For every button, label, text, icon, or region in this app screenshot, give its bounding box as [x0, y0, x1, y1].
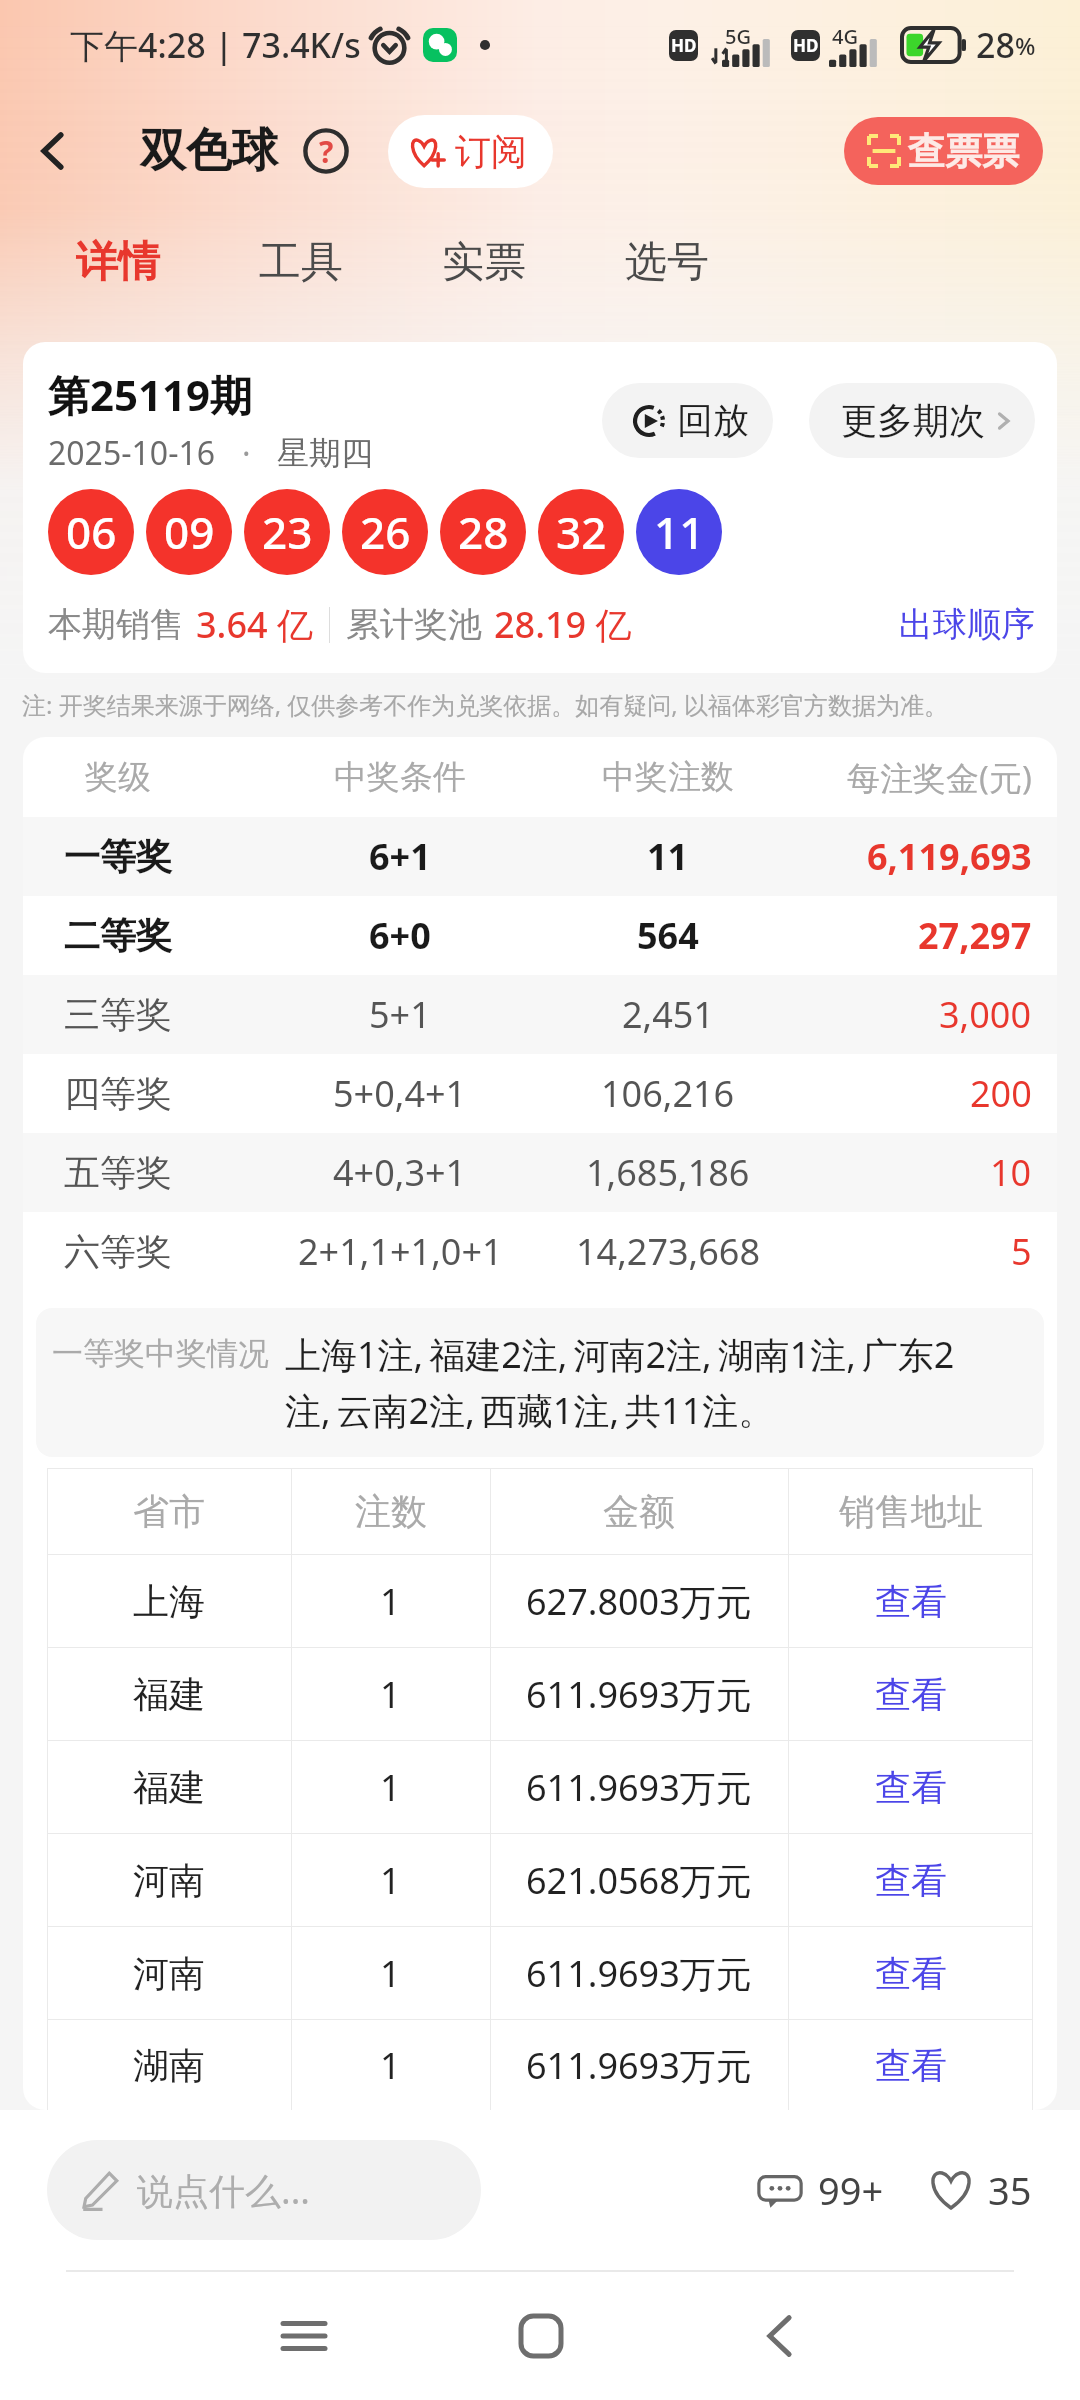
- staticText: 1: [380, 1856, 401, 1905]
- button[interactable]: Like: [926, 2164, 1032, 2216]
- staticText: 累计奖池: [346, 603, 482, 646]
- staticText: 611.9693万元: [526, 2041, 752, 2090]
- staticText: 1: [380, 1949, 401, 1998]
- button[interactable]: Back: [0, 96, 104, 206]
- staticText: 611.9693万元: [526, 1949, 752, 1998]
- button[interactable]: Recents: [258, 2290, 350, 2382]
- staticText: 1,685,186: [586, 1148, 750, 1197]
- staticText: %: [1015, 29, 1036, 62]
- staticText: 出球顺序: [899, 603, 1035, 646]
- button[interactable]: 查看: [788, 2020, 1033, 2110]
- staticText: 第25119期: [48, 366, 253, 423]
- button[interactable]: 工具: [259, 206, 442, 318]
- staticText: 621.0568万元: [526, 1856, 752, 1905]
- staticText: 福建: [133, 1672, 205, 1717]
- staticText: 1: [380, 1577, 401, 1626]
- staticText: 三等奖: [64, 992, 172, 1037]
- staticText: 查看: [875, 2043, 947, 2088]
- button[interactable]: 说点什么...: [47, 2140, 481, 2240]
- button[interactable]: 回放: [602, 383, 773, 458]
- staticText: 06: [66, 502, 117, 562]
- button[interactable]: Back: [733, 2290, 825, 2382]
- button[interactable]: Comments: [756, 2164, 884, 2216]
- staticText: 627.8003万元: [526, 1577, 752, 1626]
- button[interactable]: 订阅: [388, 115, 553, 188]
- staticText: 27,297: [918, 911, 1032, 960]
- staticText: 本期销售: [48, 603, 184, 646]
- staticText: 2,451: [622, 990, 715, 1039]
- staticText: HD: [671, 34, 697, 57]
- staticText: 上海1注, 福建2注, 河南2注, 湖南1注, 广东2 注, 云南2注, 西藏1…: [285, 1330, 955, 1435]
- staticText: 5+0,4+1: [333, 1069, 467, 1118]
- button[interactable]: Home: [495, 2290, 587, 2382]
- button[interactable]: 查看: [788, 1648, 1033, 1740]
- staticText: 26: [360, 502, 411, 562]
- staticText: 注: 开奖结果来源于网络, 仅供参考不作为兑奖依据。如有疑问, 以福体彩官方数据…: [22, 688, 949, 721]
- staticText: 14,273,668: [576, 1227, 761, 1276]
- staticText: 每注奖金(元): [847, 755, 1032, 800]
- staticText: 金额: [603, 1489, 675, 1534]
- button[interactable]: 更多期次: [809, 383, 1035, 458]
- button[interactable]: 查看: [788, 1741, 1033, 1833]
- staticText: 四等奖: [64, 1071, 172, 1116]
- button[interactable]: 查票票: [844, 117, 1043, 185]
- staticText: 查看: [875, 1951, 947, 1996]
- button[interactable]: 选号: [625, 206, 808, 318]
- staticText: 6+0: [369, 911, 431, 960]
- staticText: 6+1: [369, 832, 431, 881]
- staticText: 28.19 亿: [494, 600, 632, 649]
- staticText: 10: [990, 1148, 1032, 1197]
- staticText: 二等奖: [64, 913, 172, 958]
- staticText: 1: [380, 2041, 401, 2090]
- staticText: 查看: [875, 1579, 947, 1624]
- staticText: 1: [380, 1763, 401, 1812]
- button[interactable]: 详情: [76, 206, 259, 318]
- staticText: 奖级: [85, 756, 151, 798]
- staticText: 下午4:28 | 73.4K/s: [70, 22, 361, 68]
- staticText: ?: [319, 131, 334, 172]
- staticText: 611.9693万元: [526, 1670, 752, 1719]
- staticText: 选号: [625, 236, 709, 289]
- staticText: 更多期次: [841, 398, 985, 443]
- staticText: 说点什么...: [137, 2166, 310, 2215]
- staticText: 工具: [259, 236, 343, 289]
- staticText: 09: [164, 502, 215, 562]
- button[interactable]: 查看: [788, 1927, 1033, 2019]
- staticText: 3,000: [939, 990, 1032, 1039]
- button[interactable]: 查看: [788, 1834, 1033, 1926]
- staticText: 564: [637, 911, 699, 960]
- button[interactable]: 出球顺序: [899, 603, 1035, 646]
- staticText: 1: [380, 1670, 401, 1719]
- staticText: 35: [988, 2164, 1032, 2216]
- staticText: 一等奖中奖情况: [52, 1334, 269, 1373]
- button[interactable]: Help: [300, 125, 352, 177]
- staticText: 611.9693万元: [526, 1763, 752, 1812]
- button[interactable]: 实票: [442, 206, 625, 318]
- staticText: ·: [242, 431, 251, 475]
- staticText: 23: [262, 502, 313, 562]
- staticText: 106,216: [601, 1069, 735, 1118]
- staticText: 回放: [677, 398, 749, 443]
- staticText: 一等奖: [64, 834, 172, 879]
- staticText: HD: [793, 34, 819, 57]
- staticText: 6,119,693: [867, 832, 1032, 881]
- staticText: 11: [654, 502, 705, 562]
- staticText: 湖南: [133, 2043, 205, 2088]
- staticText: 查看: [875, 1672, 947, 1717]
- button[interactable]: 查看: [788, 1555, 1033, 1647]
- staticText: 2025-10-16: [48, 431, 216, 475]
- staticText: 上海: [133, 1579, 205, 1624]
- staticText: 查票票: [908, 128, 1019, 175]
- staticText: 28: [458, 502, 509, 562]
- staticText: 28: [976, 22, 1015, 68]
- staticText: 详情: [76, 236, 160, 289]
- staticText: 销售地址: [839, 1489, 983, 1534]
- staticText: 4G: [832, 23, 858, 50]
- staticText: 注数: [355, 1489, 427, 1534]
- staticText: 双色球: [140, 122, 278, 180]
- staticText: 五等奖: [64, 1150, 172, 1195]
- staticText: 11: [647, 832, 689, 881]
- staticText: 实票: [442, 236, 526, 289]
- staticText: 河南: [133, 1951, 205, 1996]
- staticText: 查看: [875, 1765, 947, 1810]
